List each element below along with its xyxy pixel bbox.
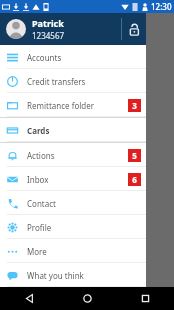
button[interactable]: More (0, 239, 146, 263)
button[interactable]: Back (0, 287, 58, 310)
button[interactable]: Unlock (122, 13, 146, 45)
staticText: Patrick (32, 17, 64, 29)
staticText: Credit transfers (27, 76, 86, 87)
staticText: Inbox (27, 174, 49, 185)
button[interactable]: Recents (116, 287, 174, 310)
staticText: 5 (132, 150, 137, 161)
button[interactable]: Contact (0, 191, 146, 215)
button[interactable]: Accounts (0, 45, 146, 69)
staticText: More (27, 246, 47, 257)
staticText: Cards (27, 125, 50, 136)
button[interactable]: What you think (0, 263, 146, 287)
staticText: 1234567 (32, 30, 65, 41)
staticText: Actions (27, 150, 55, 161)
button[interactable]: Actions (0, 143, 146, 167)
button[interactable]: Profile (0, 215, 146, 239)
button[interactable]: Inbox (0, 167, 146, 191)
staticText: 6 (132, 174, 137, 185)
staticText: Remittance folder (27, 100, 95, 111)
button[interactable]: Credit transfers (0, 69, 146, 93)
button[interactable]: Cards (0, 118, 146, 142)
staticText: Contact (27, 198, 56, 209)
staticText: What you think (27, 270, 84, 281)
staticText: Accounts (27, 52, 62, 63)
button[interactable]: Patrick (0, 13, 146, 45)
staticText: 12:30 (151, 1, 172, 12)
button[interactable]: Home (58, 287, 116, 310)
button[interactable]: Remittance folder (0, 93, 146, 117)
staticText: 3 (132, 100, 137, 111)
staticText: Profile (27, 222, 52, 233)
